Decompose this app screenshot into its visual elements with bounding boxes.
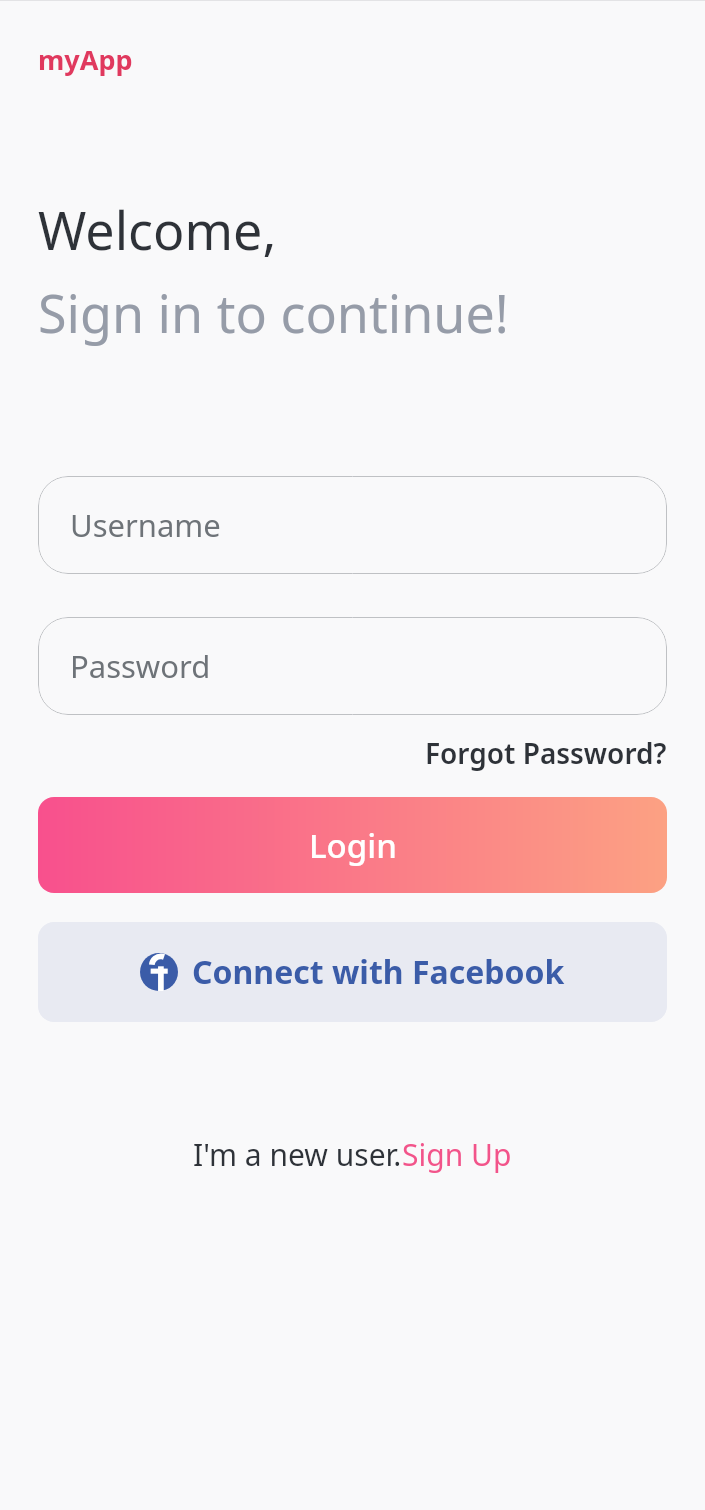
button[interactable]: Login [38,797,667,893]
button[interactable]: Sign Up [402,1134,512,1175]
staticText: myApp [38,41,133,78]
staticText: I'm a new user. [193,1134,402,1175]
staticText: Sign in to continue! [38,277,509,348]
staticText: Connect with Facebook [192,950,565,994]
button[interactable]: myApp [38,41,133,78]
staticText: Sign Up [402,1134,512,1175]
button[interactable]: Facebook [38,922,667,1022]
staticText: Username [70,504,221,546]
other: Facebook [140,953,178,991]
staticText: Login [309,823,397,868]
button[interactable]: Username [38,476,667,574]
staticText: Welcome, [38,194,277,265]
button[interactable]: Password [38,617,667,715]
staticText: Password [70,645,211,687]
staticText: Forgot Password? [425,734,667,772]
button[interactable]: Forgot Password? [425,734,667,772]
